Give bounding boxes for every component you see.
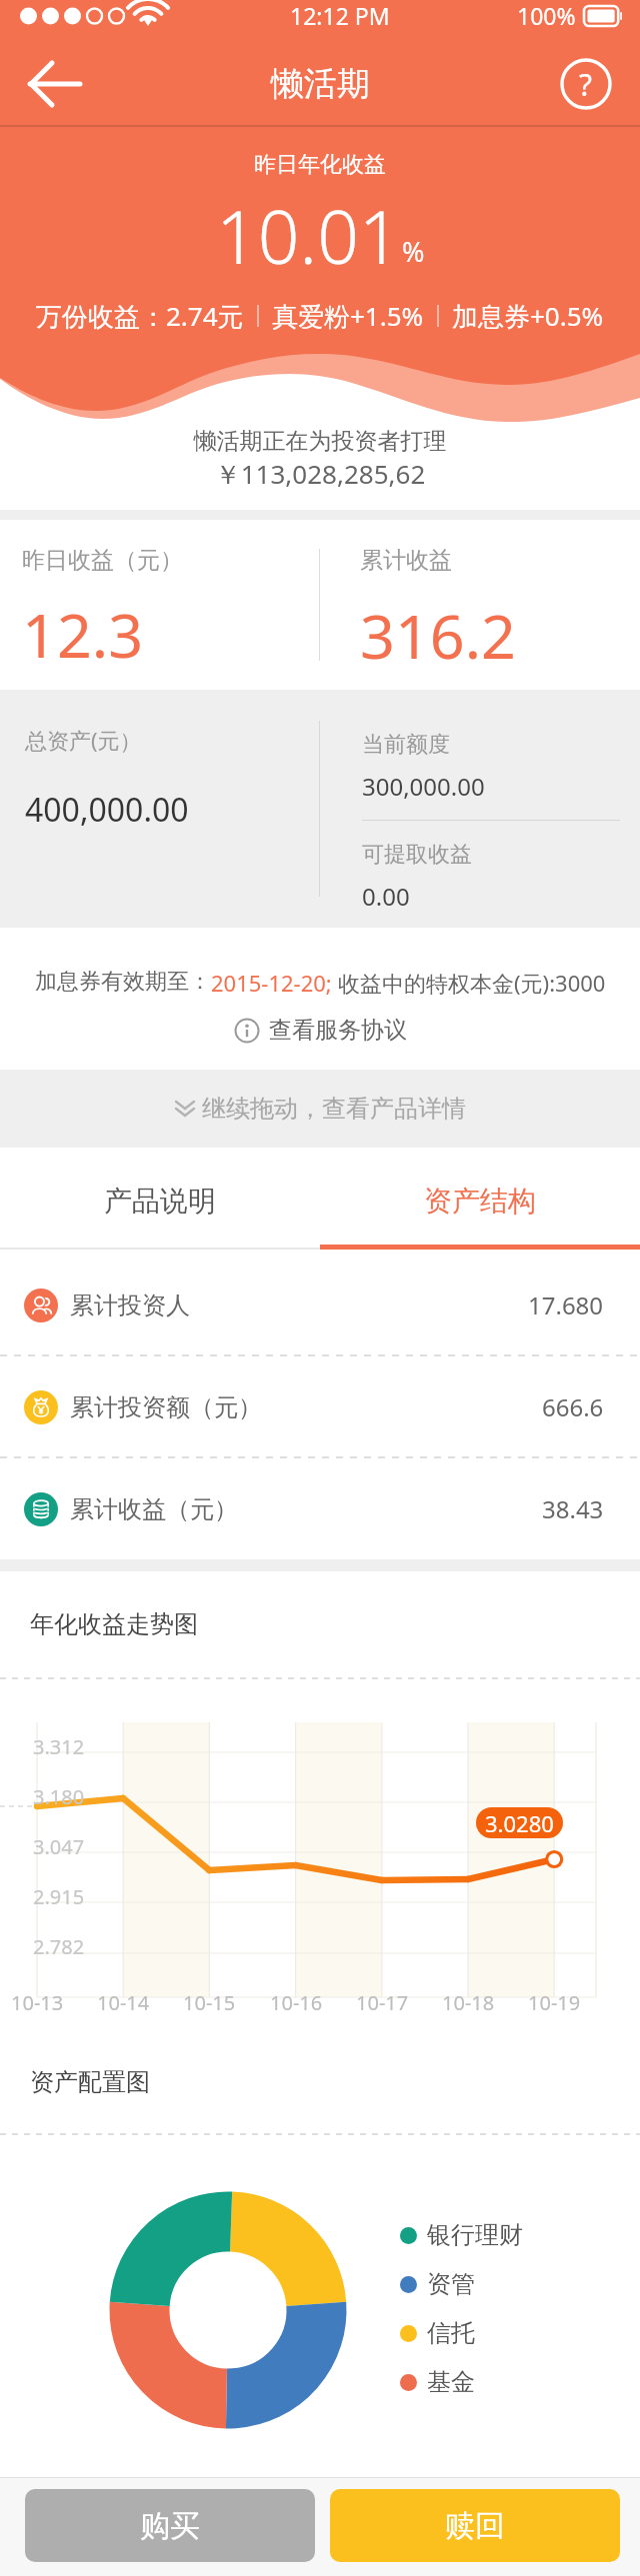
staticText: 666.6 (542, 1390, 604, 1423)
staticText: 累计收益 (360, 546, 452, 575)
staticText: 2.915 (33, 1883, 85, 1910)
staticText: 懒活期 (271, 63, 370, 105)
staticText: 300,000.00 (362, 770, 485, 803)
staticText: 3.312 (33, 1733, 85, 1760)
staticText: 可提取收益 (362, 841, 472, 869)
button[interactable]: 资管 (400, 2269, 475, 2299)
staticText: 10.01 (216, 186, 401, 285)
staticText: 400,000.00 (25, 788, 189, 832)
button[interactable]: 资产结构 (320, 1148, 640, 1255)
staticText: 100% (517, 0, 576, 31)
staticText: 2015-12-20; (211, 968, 338, 998)
button[interactable]: 基金 (400, 2367, 475, 2397)
staticText: 真爱粉+1.5% (272, 298, 424, 334)
staticText: ? (579, 64, 593, 105)
staticText: 资产结构 (424, 1184, 536, 1219)
staticText: 万份收益：2.74元 (36, 298, 244, 334)
staticText: 38.43 (542, 1492, 604, 1525)
staticText: 10-15 (183, 1989, 236, 2016)
staticText: 17.680 (528, 1288, 604, 1321)
staticText: 3.180 (33, 1783, 85, 1810)
staticText: 12:12 PM (290, 0, 390, 31)
staticText: 昨日收益（元） (22, 546, 183, 575)
staticText: 2.782 (33, 1933, 85, 1960)
staticText: 累计投资额（元） (70, 1392, 262, 1422)
staticText: 懒活期正在为投资者打理 (0, 427, 640, 456)
button[interactable]: 赎回 (330, 2489, 620, 2562)
staticText: 3.0280 (485, 1808, 554, 1838)
staticText: % (402, 233, 425, 270)
button[interactable]: 累计投资人 (0, 1255, 640, 1355)
staticText: 加息券有效期至： (35, 968, 211, 996)
button[interactable]: 累计投资额（元） (0, 1356, 640, 1457)
button[interactable]: 产品说明 (0, 1148, 320, 1255)
staticText: 10-19 (528, 1989, 581, 2016)
staticText: 10-13 (11, 1989, 64, 2016)
button[interactable]: 查看服务协议 (234, 1016, 407, 1045)
button[interactable]: Back (26, 57, 86, 111)
staticText: 316.2 (360, 594, 516, 677)
staticText: 12.3 (22, 593, 144, 676)
button[interactable]: 累计收益（元） (0, 1458, 640, 1559)
button[interactable]: 3.0280 (476, 1807, 563, 1838)
staticText: ￥113,028,285,62 (0, 456, 640, 492)
staticText: 资管 (427, 2269, 475, 2299)
staticText: 继续拖动，查看产品详情 (202, 1094, 466, 1124)
staticText: 总资产(元） (25, 725, 142, 755)
staticText: 产品说明 (104, 1184, 216, 1219)
staticText: 加息券+0.5% (452, 298, 604, 334)
staticText: 查看服务协议 (269, 1016, 407, 1045)
staticText: 银行理财 (427, 2220, 523, 2250)
staticText: 3.047 (33, 1833, 85, 1860)
staticText: 基金 (427, 2367, 475, 2397)
button[interactable]: 购买 (25, 2489, 315, 2562)
staticText: 当前额度 (362, 731, 450, 759)
staticText: 累计投资人 (70, 1290, 190, 1320)
staticText: 信托 (427, 2318, 475, 2348)
staticText: 收益中的特权本金(元):3000 (338, 968, 606, 998)
staticText: 0.00 (362, 880, 410, 913)
staticText: 赎回 (445, 2507, 505, 2545)
button[interactable]: 信托 (400, 2318, 475, 2348)
button[interactable]: Help (560, 58, 612, 110)
staticText: 10-16 (270, 1989, 323, 2016)
staticText: 累计收益（元） (70, 1494, 238, 1524)
staticText: 购买 (140, 2507, 200, 2545)
staticText: 10-17 (356, 1989, 409, 2016)
staticText: 年化收益走势图 (30, 1609, 198, 1639)
staticText: 10-18 (442, 1989, 495, 2016)
staticText: 资产配置图 (30, 2067, 150, 2097)
staticText: 10-14 (97, 1989, 150, 2016)
button[interactable]: 银行理财 (400, 2220, 523, 2250)
staticText: 昨日年化收益 (0, 151, 640, 179)
